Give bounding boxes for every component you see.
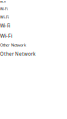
staticText: Other Network [0,51,35,57]
staticText: Wi-Fi [0,23,10,29]
staticText: Other Network [0,42,26,48]
staticText: Wi-Fi [0,7,8,11]
staticText: Wi-Fi [0,14,9,20]
staticText: Wi-Fi [0,0,6,4]
staticText: Wi-Fi [0,32,12,39]
